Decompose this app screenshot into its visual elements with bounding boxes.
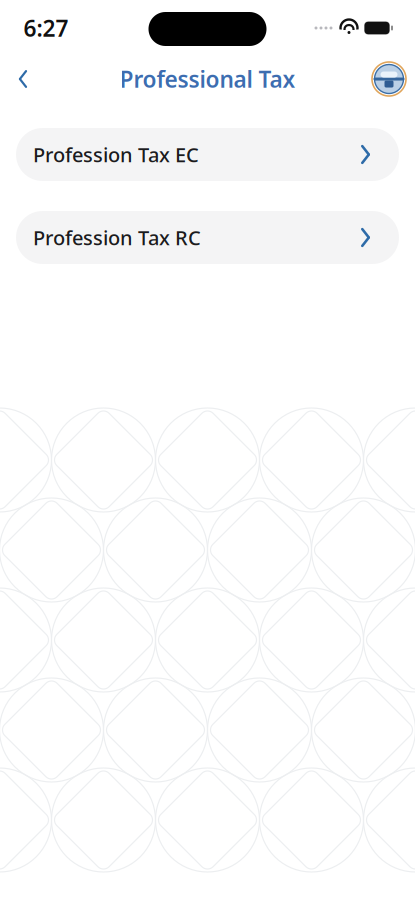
button[interactable]: Profession Tax RC — [16, 211, 399, 264]
staticText: Profession Tax RC — [33, 224, 201, 251]
button[interactable]: Back — [0, 57, 46, 101]
staticText: 6:27 — [23, 13, 68, 43]
button[interactable]: Profession Tax EC — [16, 128, 399, 181]
button[interactable]: Organisation logo — [363, 57, 415, 101]
staticText: Profession Tax EC — [33, 141, 199, 168]
staticText: Professional Tax — [119, 64, 295, 94]
